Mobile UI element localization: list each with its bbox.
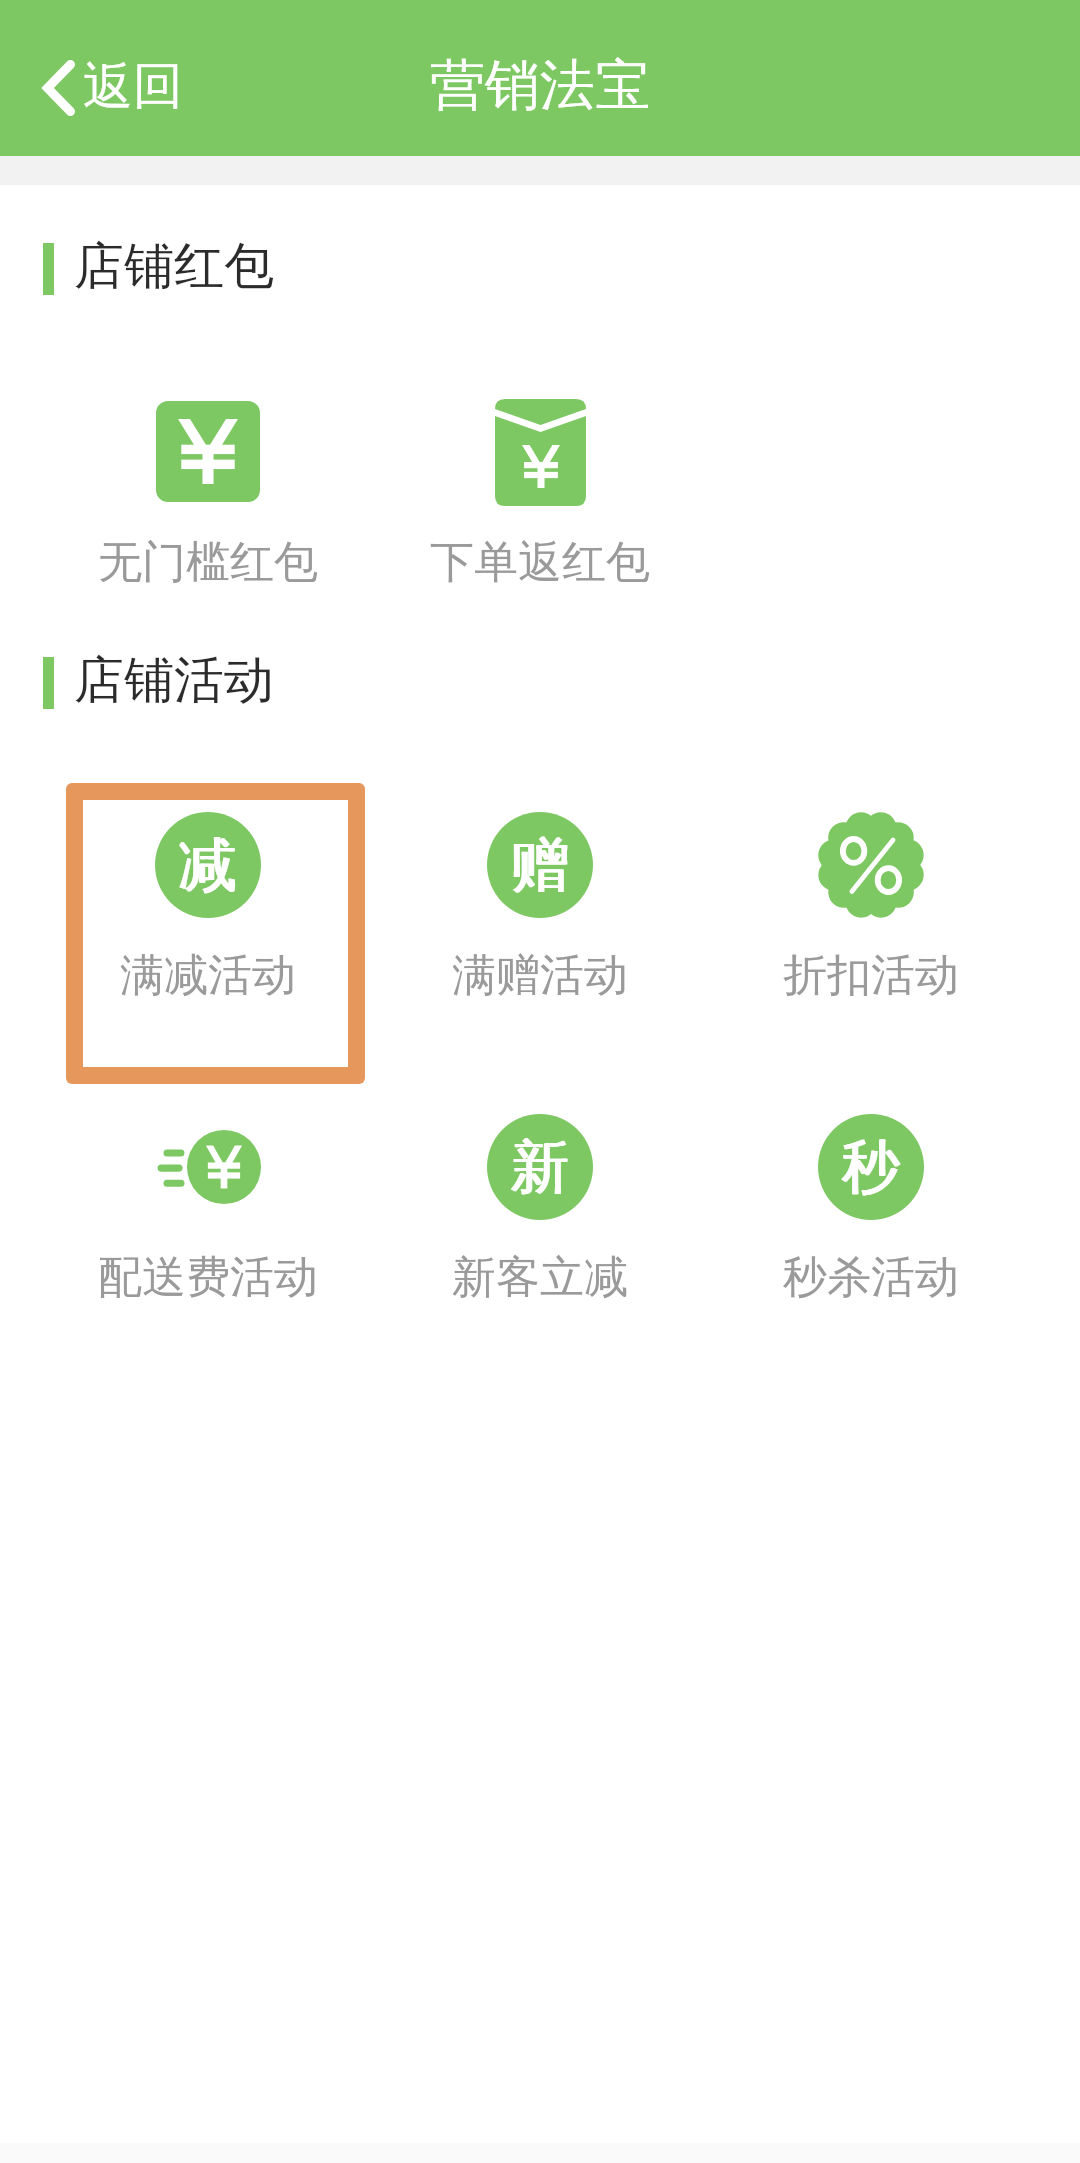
staticText: 新 bbox=[512, 1131, 570, 1204]
staticText: 无门槛红包 bbox=[98, 535, 318, 590]
staticText: 店铺红包 bbox=[74, 235, 274, 298]
staticText: 秒 bbox=[841, 1131, 899, 1204]
button[interactable]: 折扣活动 bbox=[705, 785, 1037, 1019]
staticText: 新 bbox=[510, 1131, 568, 1204]
staticText: 配送费活动 bbox=[98, 1250, 318, 1305]
button[interactable]: 新 bbox=[374, 1087, 706, 1321]
button[interactable]: 赠 bbox=[374, 785, 706, 1019]
staticText: 新 bbox=[511, 1131, 569, 1204]
staticText: 减 bbox=[178, 829, 236, 902]
button[interactable]: Back bbox=[43, 56, 183, 119]
staticText: 新客立减 bbox=[452, 1250, 628, 1305]
staticText: 赠 bbox=[511, 829, 569, 902]
staticText: 秒 bbox=[842, 1131, 900, 1204]
staticText: 店铺活动 bbox=[74, 649, 274, 712]
button[interactable]: 减 bbox=[66, 783, 365, 1084]
button[interactable]: 下单返红包 bbox=[374, 372, 706, 606]
staticText: 返回 bbox=[83, 55, 183, 118]
other: Back bbox=[43, 60, 75, 116]
staticText: 满赠活动 bbox=[452, 948, 628, 1003]
staticText: 秒 bbox=[843, 1131, 901, 1204]
staticText: 赠 bbox=[512, 829, 570, 902]
staticText: 减 bbox=[179, 829, 237, 902]
staticText: 秒杀活动 bbox=[783, 1250, 959, 1305]
staticText: 满减活动 bbox=[120, 948, 296, 1003]
button[interactable]: 配送费活动 bbox=[42, 1087, 374, 1321]
staticText: 营销法宝 bbox=[430, 51, 650, 120]
button[interactable]: 秒 bbox=[705, 1087, 1037, 1321]
button[interactable]: 无门槛红包 bbox=[42, 371, 374, 606]
staticText: 折扣活动 bbox=[783, 948, 959, 1003]
staticText: 减 bbox=[180, 829, 238, 902]
staticText: 下单返红包 bbox=[430, 535, 650, 590]
staticText: 赠 bbox=[510, 829, 568, 902]
